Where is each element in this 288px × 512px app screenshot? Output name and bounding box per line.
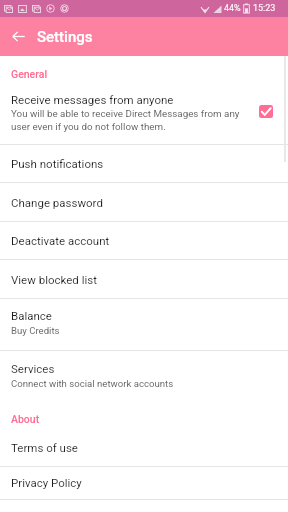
staticText: General xyxy=(11,68,48,80)
staticText: 15:23 xyxy=(253,3,276,14)
button[interactable]: Privacy Policy xyxy=(0,467,288,500)
staticText: About xyxy=(11,413,40,425)
staticText: View blocked list xyxy=(11,273,97,286)
button[interactable]: Balance xyxy=(0,299,288,351)
button[interactable]: Receive messages from anyone xyxy=(0,86,288,144)
button[interactable]: Deactivate account xyxy=(0,222,288,260)
staticText: Privacy Policy xyxy=(11,476,82,489)
staticText: Settings xyxy=(37,28,93,46)
staticText: Connect with social network accounts xyxy=(11,378,174,389)
staticText: Receive messages from anyone xyxy=(11,93,174,106)
staticText: Services xyxy=(11,362,55,375)
button[interactable]: View blocked list xyxy=(0,260,288,299)
staticText: Change password xyxy=(11,196,103,209)
button[interactable]: Back xyxy=(0,17,36,56)
button[interactable]: Push notifications xyxy=(0,145,288,183)
staticText: Buy Credits xyxy=(11,325,60,336)
staticText: Push notifications xyxy=(11,157,104,170)
button[interactable]: Services xyxy=(0,351,288,403)
staticText: 44% xyxy=(224,3,241,14)
button[interactable]: Change password xyxy=(0,183,288,222)
staticText: Balance xyxy=(11,309,52,322)
staticText: Terms of use xyxy=(11,441,78,454)
staticText: You will be able to receive Direct Messa… xyxy=(11,108,253,132)
staticText: Deactivate account xyxy=(11,234,110,247)
button[interactable]: Receive messages from anyone, checked xyxy=(259,105,273,118)
button[interactable]: Terms of use xyxy=(0,430,288,467)
